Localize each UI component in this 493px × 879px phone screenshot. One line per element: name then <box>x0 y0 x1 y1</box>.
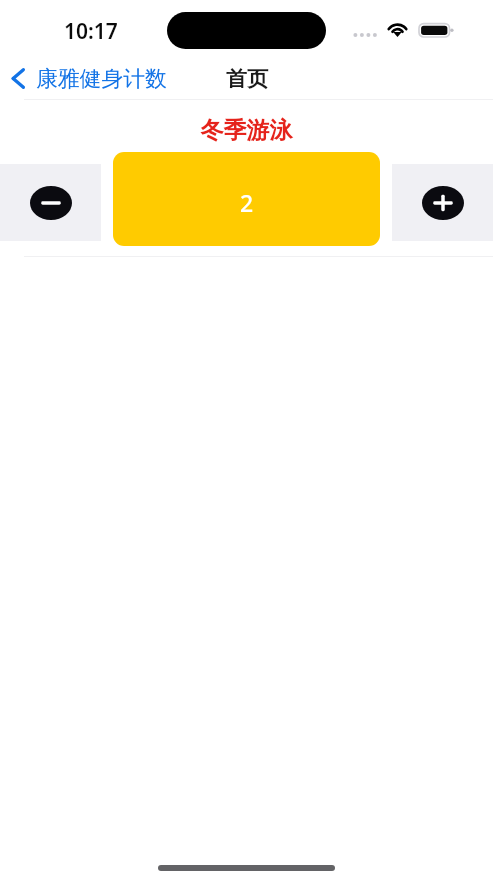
staticText: 冬季游泳 <box>0 116 493 145</box>
button[interactable]: 返回 康雅健身计数 <box>0 61 177 96</box>
button[interactable]: Decrease count <box>0 164 101 241</box>
staticText: 首页 <box>226 66 268 92</box>
staticText: 2 <box>240 187 254 218</box>
button[interactable]: 2 <box>113 152 380 246</box>
staticText: 10:17 <box>64 17 118 46</box>
button[interactable]: Increase count <box>392 164 493 241</box>
staticText: 康雅健身计数 <box>36 65 167 92</box>
